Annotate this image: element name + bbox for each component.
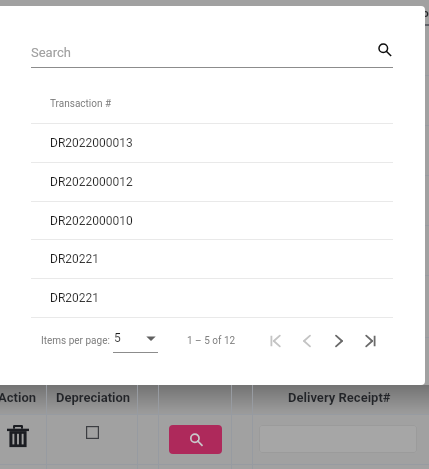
staticText: DR20221 <box>50 252 99 266</box>
button[interactable]: Last page <box>359 329 383 353</box>
button[interactable]: Next page <box>327 329 351 353</box>
staticText: DR20221 <box>50 291 99 305</box>
staticText: Location <box>392 7 429 20</box>
staticText: Items per page: <box>41 335 110 347</box>
button[interactable]: DR20221 <box>31 239 393 278</box>
button[interactable]: Previous page <box>295 329 319 353</box>
button[interactable]: Search <box>169 425 222 454</box>
button[interactable]: DR2022000013 <box>31 123 393 162</box>
staticText: 5 <box>114 331 121 345</box>
button[interactable]: DR2022000012 <box>31 162 393 201</box>
button[interactable]: Delete <box>7 424 29 448</box>
button[interactable]: DR20221 <box>31 278 393 317</box>
button[interactable]: Search <box>31 38 393 64</box>
staticText: Depreciation <box>56 390 131 405</box>
button[interactable]: Items per page <box>113 327 158 353</box>
other: Search <box>375 41 393 59</box>
staticText: 1 – 5 of 12 <box>187 335 236 347</box>
staticText: DR2022000012 <box>50 175 133 189</box>
staticText: Transaction # <box>50 98 112 110</box>
staticText: DR2022000010 <box>50 214 133 228</box>
button[interactable]: DR2022000010 <box>31 201 393 240</box>
staticText: Delivery Receipt# <box>288 390 391 405</box>
staticText: Search <box>31 45 71 60</box>
button[interactable]: First page <box>263 329 287 353</box>
button[interactable]: Depreciation <box>86 426 99 439</box>
staticText: DR2022000013 <box>50 136 133 150</box>
staticText: Action <box>0 390 37 405</box>
